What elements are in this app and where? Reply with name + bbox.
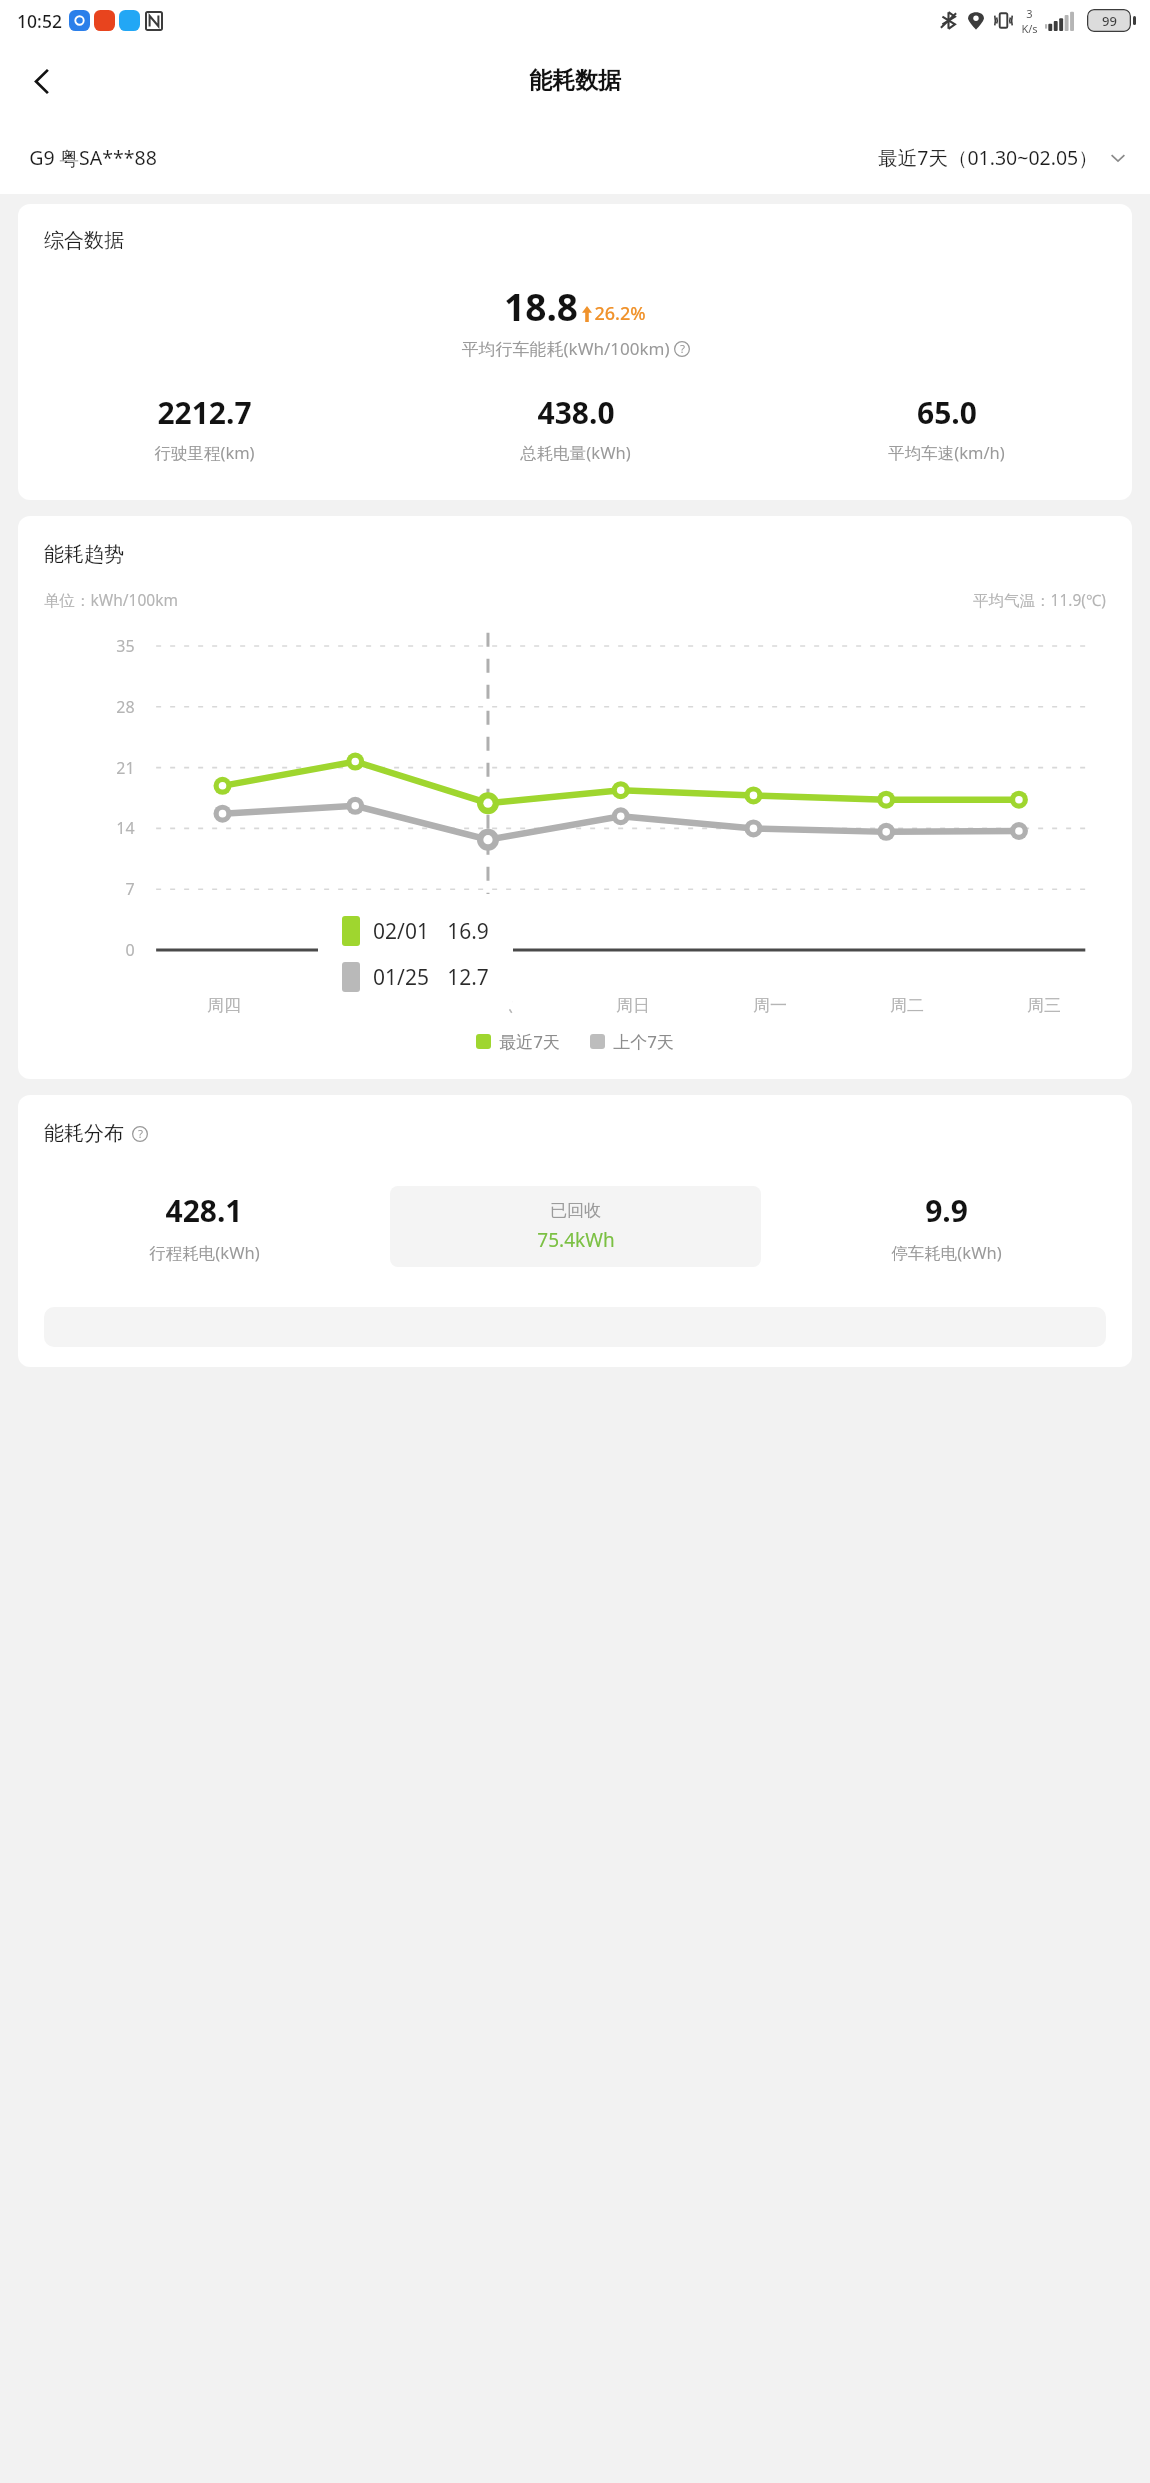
staticText: 平均车速(km/h) bbox=[888, 441, 1005, 464]
staticText: 平均气温：11.9(℃) bbox=[973, 589, 1106, 610]
staticText: 周一 bbox=[753, 995, 787, 1016]
staticText: 75.4kWh bbox=[537, 1227, 615, 1253]
staticText: 能耗分布 bbox=[44, 1121, 124, 1146]
staticText: 14 bbox=[116, 817, 135, 839]
staticText: ? bbox=[138, 1126, 143, 1142]
staticText: 周二 bbox=[890, 995, 924, 1016]
staticText: 99 bbox=[1102, 12, 1117, 30]
staticText: 周四 bbox=[207, 995, 241, 1016]
staticText: 26.2% bbox=[594, 301, 646, 326]
staticText: 02/01 bbox=[373, 917, 429, 946]
staticText: 7 bbox=[125, 878, 135, 900]
staticText: 12.7 bbox=[447, 963, 489, 992]
staticText: 平均行车能耗(kWh/100km) bbox=[461, 337, 670, 360]
staticText: 最近7天（01.30~02.05） bbox=[878, 144, 1098, 171]
button[interactable]: G9 粤SA***88 bbox=[29, 144, 157, 171]
staticText: 单位：kWh/100km bbox=[44, 589, 178, 610]
staticText: 10:52 bbox=[17, 9, 62, 33]
staticText: 0 bbox=[125, 939, 135, 961]
staticText: 3 bbox=[1026, 6, 1033, 21]
staticText: 总耗电量(kWh) bbox=[520, 441, 631, 464]
staticText: 438.0 bbox=[537, 392, 615, 433]
staticText: 21 bbox=[116, 757, 135, 779]
staticText: 01/25 bbox=[373, 963, 429, 992]
staticText: 28 bbox=[116, 696, 135, 718]
staticText: K/s bbox=[1021, 21, 1038, 36]
staticText: 能耗趋势 bbox=[44, 542, 124, 567]
staticText: 停车耗电(kWh) bbox=[891, 1241, 1002, 1264]
staticText: 周六 bbox=[479, 995, 513, 1016]
staticText: 35 bbox=[116, 635, 135, 657]
staticText: 2212.7 bbox=[157, 392, 252, 433]
staticText: 能耗数据 bbox=[529, 66, 621, 95]
staticText: 18.8 bbox=[504, 281, 578, 331]
button[interactable]: 最近7天（01.30~02.05） bbox=[878, 144, 1128, 171]
button[interactable]: Back bbox=[14, 53, 70, 109]
staticText: ? bbox=[680, 341, 685, 357]
staticText: 周三 bbox=[1027, 995, 1061, 1016]
staticText: 行驶里程(km) bbox=[154, 441, 255, 464]
staticText: 行程耗电(kWh) bbox=[149, 1241, 260, 1264]
staticText: 上个7天 bbox=[613, 1030, 674, 1053]
staticText: G9 粤SA***88 bbox=[29, 144, 157, 171]
staticText: 16.9 bbox=[447, 917, 489, 946]
staticText: 已回收 bbox=[550, 1200, 601, 1221]
staticText: 周日 bbox=[616, 995, 650, 1016]
staticText: 428.1 bbox=[165, 1190, 243, 1231]
staticText: 65.0 bbox=[917, 392, 977, 433]
staticText: 最近7天 bbox=[499, 1030, 560, 1053]
staticText: 9.9 bbox=[925, 1190, 968, 1231]
staticText: 综合数据 bbox=[44, 228, 124, 253]
